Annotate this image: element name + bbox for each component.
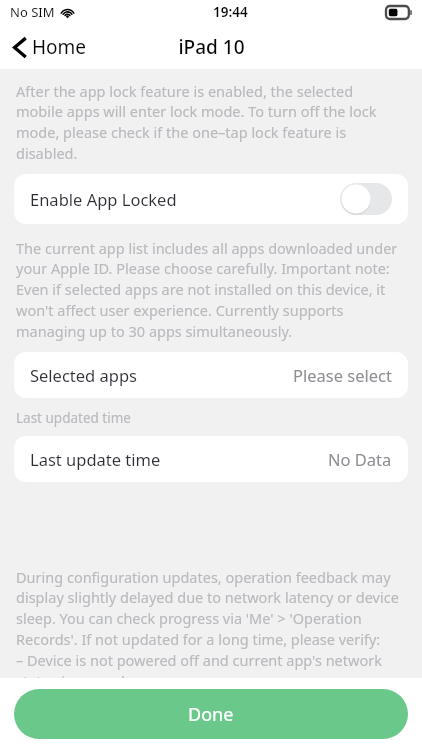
button[interactable]: Selected apps: [14, 352, 408, 398]
staticText: Done: [188, 702, 234, 727]
staticText: After the app lock feature is enabled, t…: [16, 81, 402, 164]
staticText: Last update time: [30, 448, 161, 470]
staticText: During configuration updates, operation …: [16, 567, 402, 678]
button[interactable]: Last update time: [14, 436, 408, 482]
staticText: Enable App Locked: [30, 188, 177, 210]
staticText: The current app list includes all apps d…: [16, 238, 402, 342]
staticText: iPad 10: [178, 34, 245, 60]
button[interactable]: Enable App Locked toggle: [340, 183, 392, 215]
button[interactable]: Done: [14, 689, 408, 739]
button[interactable]: Enable App Locked: [14, 174, 408, 224]
staticText: 19:44: [213, 3, 248, 21]
button[interactable]: Home: [10, 30, 91, 64]
staticText: No SIM: [10, 3, 55, 21]
staticText: Selected apps: [30, 364, 138, 386]
staticText: Please select: [293, 364, 392, 386]
staticText: No Data: [328, 448, 392, 470]
staticText: Last updated time: [16, 409, 131, 427]
staticText: Home: [32, 34, 87, 60]
